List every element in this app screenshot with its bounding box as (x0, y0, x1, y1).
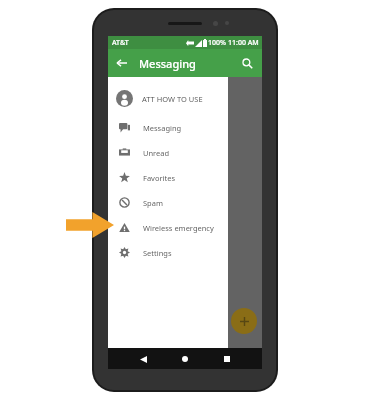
staticText: 11:00 AM (228, 38, 259, 48)
button[interactable]: Messaging (108, 115, 228, 140)
staticText: AT&T (112, 38, 129, 48)
button[interactable]: Spam (108, 190, 228, 215)
staticText: Spam (143, 198, 163, 208)
button[interactable]: Settings (108, 240, 228, 265)
button[interactable]: Navigate up (113, 54, 131, 72)
button[interactable]: Home (178, 352, 192, 366)
button[interactable]: Wireless emergency alerts (108, 215, 228, 240)
staticText: 100% (208, 38, 226, 48)
button[interactable]: New message (231, 308, 257, 334)
button[interactable]: Recent apps (220, 352, 234, 366)
staticText: Favorites (143, 173, 176, 183)
staticText: Messaging (143, 123, 182, 133)
staticText: ATT HOW TO USE (142, 94, 203, 104)
staticText: Wireless emergency alerts (143, 223, 228, 233)
button[interactable]: ATT HOW TO USE (108, 82, 228, 115)
staticText: Settings (143, 248, 172, 258)
button[interactable]: Search (238, 54, 256, 72)
staticText: Unread (143, 148, 170, 158)
button[interactable]: Unread (108, 140, 228, 165)
button[interactable]: Back (136, 352, 150, 366)
button[interactable]: Favorites (108, 165, 228, 190)
staticText: Messaging (139, 56, 196, 71)
